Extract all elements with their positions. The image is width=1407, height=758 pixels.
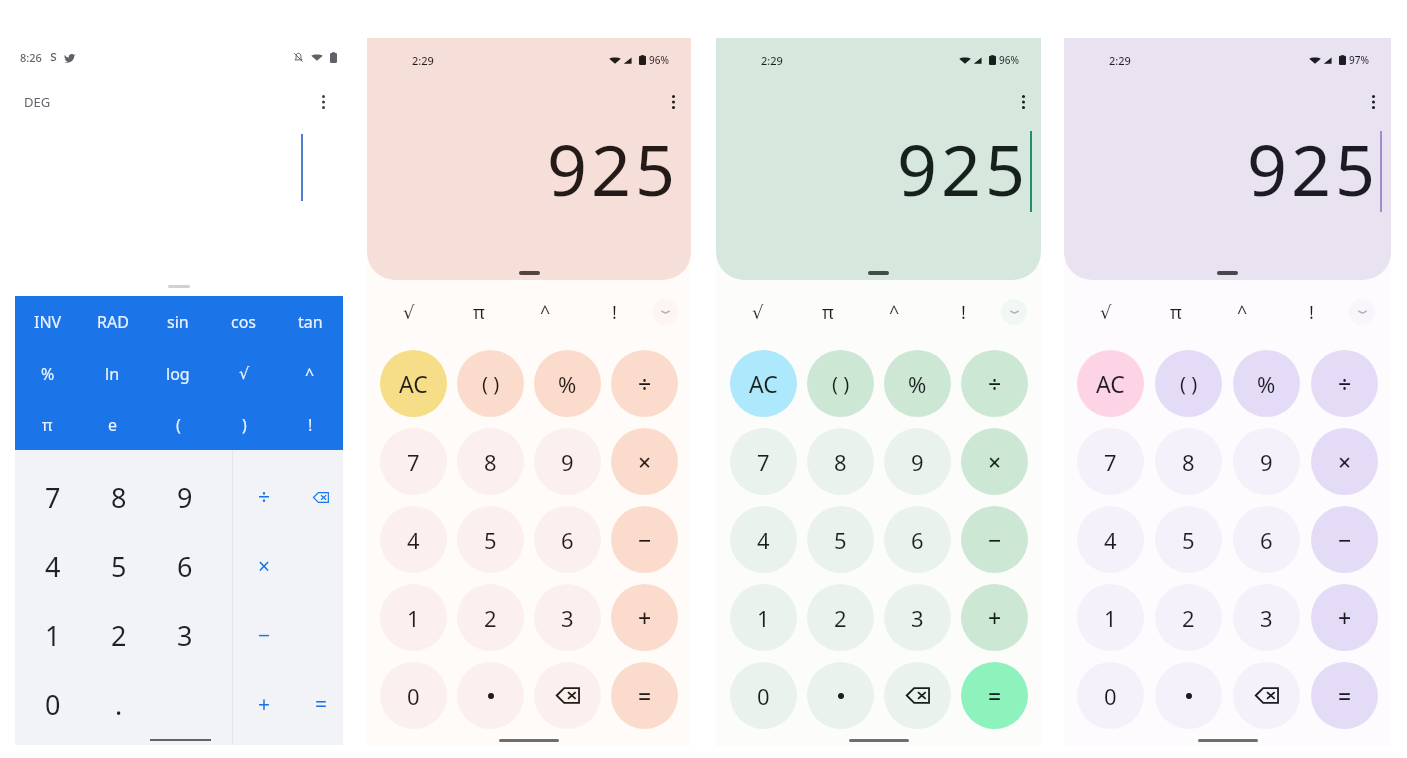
button[interactable]: 5	[1155, 506, 1222, 573]
button[interactable]: Delete	[293, 463, 349, 532]
button[interactable]: 5	[457, 506, 524, 573]
button[interactable]: More options	[1011, 90, 1035, 114]
button[interactable]: !	[939, 280, 987, 344]
button[interactable]: 7	[1077, 428, 1144, 495]
button[interactable]: Delete	[534, 662, 601, 729]
button[interactable]: 0	[1077, 662, 1144, 729]
button[interactable]: More options	[311, 90, 335, 114]
button[interactable]: =	[611, 662, 678, 729]
button[interactable]: +	[611, 584, 678, 651]
button[interactable]: =	[293, 670, 349, 739]
button[interactable]: e	[80, 399, 145, 450]
button[interactable]: Expand	[652, 299, 678, 325]
button[interactable]: 0	[730, 662, 797, 729]
button[interactable]: ×	[961, 428, 1028, 495]
button[interactable]	[457, 662, 524, 729]
button[interactable]: 6	[152, 532, 218, 601]
button[interactable]: DEG	[23, 93, 52, 111]
button[interactable]: sin	[145, 296, 211, 348]
button[interactable]: %	[534, 350, 601, 417]
button[interactable]: 8	[457, 428, 524, 495]
button[interactable]: +	[236, 670, 292, 739]
button[interactable]: ( )	[807, 350, 874, 417]
button[interactable]: 9	[152, 463, 218, 532]
button[interactable]: RAD	[80, 296, 145, 348]
button[interactable]: More options	[661, 90, 685, 114]
button[interactable]: −	[961, 506, 1028, 573]
button[interactable]: 2	[807, 584, 874, 651]
button[interactable]: +	[961, 584, 1028, 651]
button[interactable]: 1	[380, 584, 447, 651]
button[interactable]: 7	[20, 463, 86, 532]
button[interactable]: 1	[20, 601, 86, 670]
button[interactable]: 3	[884, 584, 951, 651]
button[interactable]: )	[211, 399, 277, 450]
button[interactable]: AC	[730, 350, 797, 417]
button[interactable]: =	[1311, 662, 1378, 729]
button[interactable]: ÷	[961, 350, 1028, 417]
button[interactable]: 4	[1077, 506, 1144, 573]
button[interactable]: 4	[730, 506, 797, 573]
button[interactable]: 9	[534, 428, 601, 495]
button[interactable]: 1	[1077, 584, 1144, 651]
button[interactable]: ×	[236, 532, 292, 601]
button[interactable]: !	[277, 399, 343, 450]
button[interactable]: =	[961, 662, 1028, 729]
button[interactable]: Expand	[1349, 299, 1375, 325]
button[interactable]: π	[804, 280, 852, 344]
button[interactable]: (	[145, 399, 211, 450]
button[interactable]: 3	[534, 584, 601, 651]
button[interactable]	[1155, 662, 1222, 729]
button[interactable]: +	[1311, 584, 1378, 651]
button[interactable]: −	[1311, 506, 1378, 573]
button[interactable]: −	[611, 506, 678, 573]
button[interactable]: !	[1287, 280, 1335, 344]
button[interactable]: cos	[211, 296, 277, 348]
button[interactable]: 4	[380, 506, 447, 573]
button[interactable]: ^	[1218, 280, 1266, 344]
button[interactable]: π	[15, 399, 80, 450]
button[interactable]: ^	[521, 280, 569, 344]
button[interactable]: 3	[152, 601, 218, 670]
button[interactable]: %	[15, 348, 80, 399]
button[interactable]: 0	[380, 662, 447, 729]
button[interactable]: √	[211, 348, 277, 399]
button[interactable]: 6	[1233, 506, 1300, 573]
button[interactable]: INV	[15, 296, 80, 348]
button[interactable]: −	[236, 601, 292, 670]
button[interactable]: √	[385, 280, 433, 344]
button[interactable]: 8	[1155, 428, 1222, 495]
button[interactable]: ×	[1311, 428, 1378, 495]
button[interactable]: .	[86, 670, 152, 739]
button[interactable]: tan	[277, 296, 343, 348]
button[interactable]: 2	[457, 584, 524, 651]
button[interactable]: √	[734, 280, 782, 344]
button[interactable]: ^	[277, 348, 343, 399]
button[interactable]: ln	[80, 348, 145, 399]
button[interactable]: √	[1082, 280, 1130, 344]
button[interactable]: Delete	[1233, 662, 1300, 729]
button[interactable]: !	[590, 280, 638, 344]
button[interactable]	[807, 662, 874, 729]
button[interactable]: 1	[730, 584, 797, 651]
button[interactable]: 0	[20, 670, 86, 739]
button[interactable]: ^	[870, 280, 918, 344]
button[interactable]: ( )	[1155, 350, 1222, 417]
button[interactable]: 6	[534, 506, 601, 573]
button[interactable]: AC	[380, 350, 447, 417]
button[interactable]: 8	[86, 463, 152, 532]
button[interactable]: More options	[1361, 90, 1385, 114]
button[interactable]: 6	[884, 506, 951, 573]
button[interactable]: 8	[807, 428, 874, 495]
button[interactable]: Delete	[884, 662, 951, 729]
button[interactable]: 9	[1233, 428, 1300, 495]
button[interactable]: 9	[884, 428, 951, 495]
button[interactable]: 7	[730, 428, 797, 495]
button[interactable]: ÷	[1311, 350, 1378, 417]
button[interactable]: AC	[1077, 350, 1144, 417]
button[interactable]: ( )	[457, 350, 524, 417]
button[interactable]: %	[1233, 350, 1300, 417]
button[interactable]: 2	[1155, 584, 1222, 651]
button[interactable]: ÷	[236, 463, 292, 532]
button[interactable]: π	[1152, 280, 1200, 344]
